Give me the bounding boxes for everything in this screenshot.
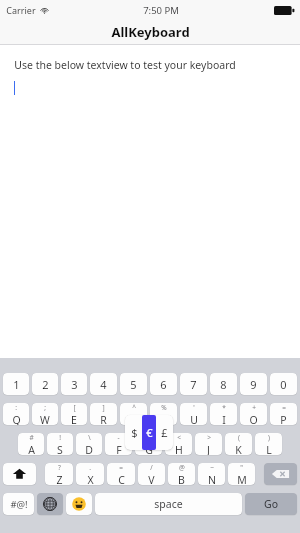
staticText: Q: [12, 413, 21, 425]
staticText: ^: [132, 403, 136, 412]
staticText: ~: [210, 463, 214, 472]
staticText: ;: [44, 403, 46, 412]
button[interactable]: [: [61, 403, 87, 425]
button[interactable]: ^: [120, 403, 147, 425]
staticText: $: [131, 425, 138, 440]
button[interactable]: _: [135, 433, 162, 455]
staticText: @: [179, 463, 185, 472]
button[interactable]: !: [47, 433, 73, 455]
button[interactable]: <: [165, 433, 192, 455]
button[interactable]: 9: [240, 373, 267, 395]
button[interactable]: ~: [198, 463, 225, 485]
button[interactable]: #@!: [3, 493, 34, 515]
button[interactable]: ?: [45, 463, 73, 485]
staticText: (: [238, 433, 240, 442]
button[interactable]: 7: [180, 373, 207, 395]
staticText: M: [237, 473, 247, 485]
button[interactable]: Shift: [3, 463, 36, 485]
staticText: =: [282, 403, 286, 412]
button[interactable]: #: [18, 433, 44, 455]
button[interactable]: 4: [90, 373, 117, 395]
button[interactable]: %: [150, 403, 177, 425]
staticText: U: [190, 413, 198, 425]
staticText: !: [59, 433, 61, 442]
button[interactable]: ": [228, 463, 255, 485]
staticText: AllKeyboard: [111, 23, 190, 41]
staticText: 7:50 PM: [143, 4, 179, 17]
button[interactable]: *: [210, 403, 237, 425]
button[interactable]: :: [3, 403, 29, 425]
staticText: A: [28, 443, 35, 455]
staticText: 8: [220, 377, 227, 392]
staticText: <: [177, 433, 181, 442]
staticText: %: [161, 403, 167, 412]
staticText: Go: [264, 497, 278, 511]
staticText: V: [148, 473, 155, 485]
button[interactable]: 8: [210, 373, 237, 395]
staticText: ]: [102, 403, 105, 412]
button[interactable]: 6: [150, 373, 177, 395]
button[interactable]: Go: [245, 493, 297, 515]
button[interactable]: =: [107, 463, 135, 485]
button[interactable]: Backspace: [264, 463, 297, 485]
staticText: 9: [250, 377, 257, 392]
staticText: £: [161, 425, 168, 440]
staticText: K: [235, 443, 242, 455]
staticText: #: [29, 433, 34, 442]
staticText: X: [87, 473, 94, 485]
staticText: =: [119, 463, 123, 472]
staticText: 7: [190, 377, 197, 392]
staticText: >: [207, 433, 211, 442]
staticText: ": [240, 463, 243, 472]
button[interactable]: $: [125, 415, 173, 450]
staticText: S: [57, 443, 63, 455]
staticText: I: [222, 413, 226, 425]
button[interactable]: -: [105, 433, 132, 455]
staticText: 0: [280, 377, 287, 392]
staticText: E: [71, 413, 77, 425]
staticText: +: [252, 403, 256, 412]
button[interactable]: 3: [61, 373, 87, 395]
staticText: 4: [100, 377, 107, 392]
button[interactable]: 1: [3, 373, 29, 395]
staticText: space: [154, 497, 183, 511]
staticText: F: [116, 443, 122, 455]
staticText: B: [178, 473, 185, 485]
staticText: 5: [130, 377, 137, 392]
staticText: /: [150, 463, 153, 472]
staticText: H: [175, 443, 183, 455]
staticText: J: [207, 443, 210, 455]
button[interactable]: 5: [120, 373, 147, 395]
staticText: N: [208, 473, 216, 485]
staticText: ): [268, 433, 270, 442]
button[interactable]: +: [240, 403, 267, 425]
staticText: O: [249, 413, 258, 425]
button[interactable]: ]: [90, 403, 117, 425]
button[interactable]: \: [76, 433, 102, 455]
staticText: -: [117, 433, 120, 442]
button[interactable]: Next keyboard: [37, 493, 63, 515]
staticText: ': [193, 403, 195, 412]
staticText: *: [222, 403, 226, 412]
staticText: P: [280, 413, 287, 425]
button[interactable]: .: [76, 463, 104, 485]
staticText: 1: [13, 377, 20, 392]
button[interactable]: ': [180, 403, 207, 425]
staticText: 6: [160, 377, 167, 392]
button[interactable]: (: [225, 433, 252, 455]
button[interactable]: space: [95, 493, 242, 515]
button[interactable]: ): [255, 433, 282, 455]
button[interactable]: 2: [32, 373, 58, 395]
staticText: R: [100, 413, 107, 425]
button[interactable]: 0: [270, 373, 297, 395]
button[interactable]: /: [138, 463, 165, 485]
button[interactable]: Emoji: [66, 493, 92, 515]
button[interactable]: =: [270, 403, 297, 425]
staticText: L: [266, 443, 272, 455]
staticText: .: [89, 463, 91, 472]
button[interactable]: ;: [32, 403, 58, 425]
button[interactable]: @: [168, 463, 195, 485]
button[interactable]: >: [195, 433, 222, 455]
staticText: #@!: [10, 498, 28, 511]
